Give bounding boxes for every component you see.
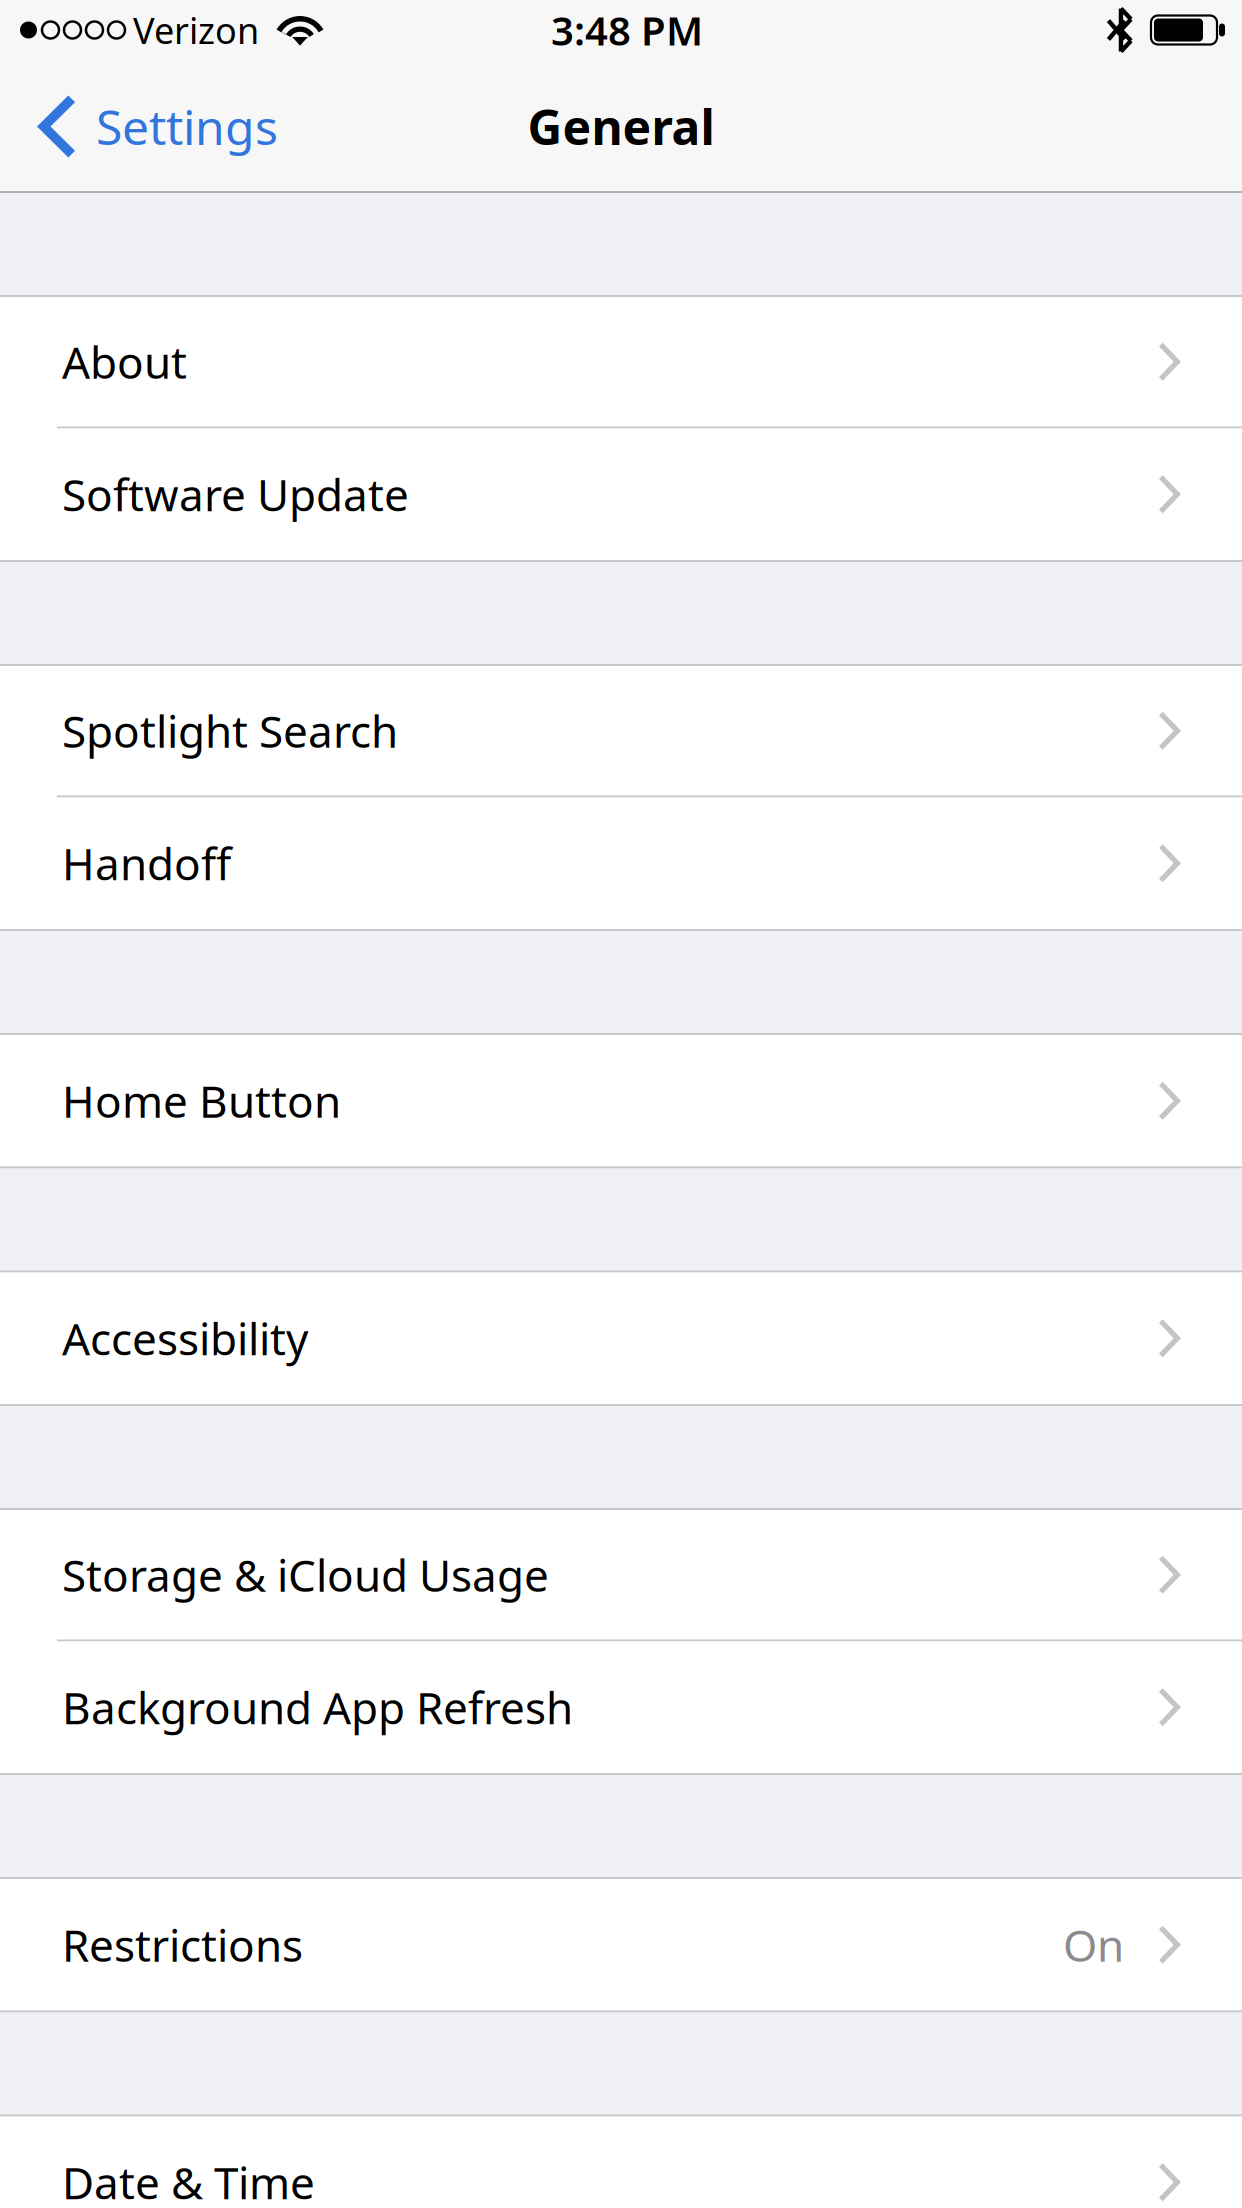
button[interactable]: Accessibility: [0, 1272, 1242, 1404]
button[interactable]: Restrictions: [0, 1879, 1242, 2010]
staticText: Restrictions: [62, 1915, 303, 1974]
button[interactable]: About: [0, 297, 1242, 428]
button[interactable]: Software Update: [0, 428, 1242, 560]
staticText: Background App Refresh: [62, 1678, 573, 1736]
staticText: On: [1063, 1915, 1124, 1974]
button[interactable]: Spotlight Search: [0, 666, 1242, 797]
button[interactable]: Storage & iCloud Usage: [0, 1510, 1242, 1641]
staticText: Date & Time: [62, 2153, 315, 2208]
staticText: 3:48 PM: [551, 3, 703, 56]
staticText: Settings: [96, 95, 278, 158]
staticText: Handoff: [62, 834, 231, 892]
staticText: Home Button: [62, 1071, 341, 1130]
staticText: General: [527, 95, 714, 158]
staticText: Software Update: [62, 465, 409, 523]
staticText: Spotlight Search: [62, 701, 398, 760]
staticText: Accessibility: [62, 1309, 308, 1367]
button[interactable]: Background App Refresh: [0, 1641, 1242, 1773]
button[interactable]: Settings: [0, 60, 298, 193]
button[interactable]: Home Button: [0, 1035, 1242, 1166]
staticText: About: [62, 332, 187, 391]
button[interactable]: Handoff: [0, 797, 1242, 929]
staticText: Verizon: [133, 6, 259, 54]
staticText: Storage & iCloud Usage: [62, 1545, 549, 1604]
button[interactable]: Date & Time: [0, 2116, 1242, 2208]
